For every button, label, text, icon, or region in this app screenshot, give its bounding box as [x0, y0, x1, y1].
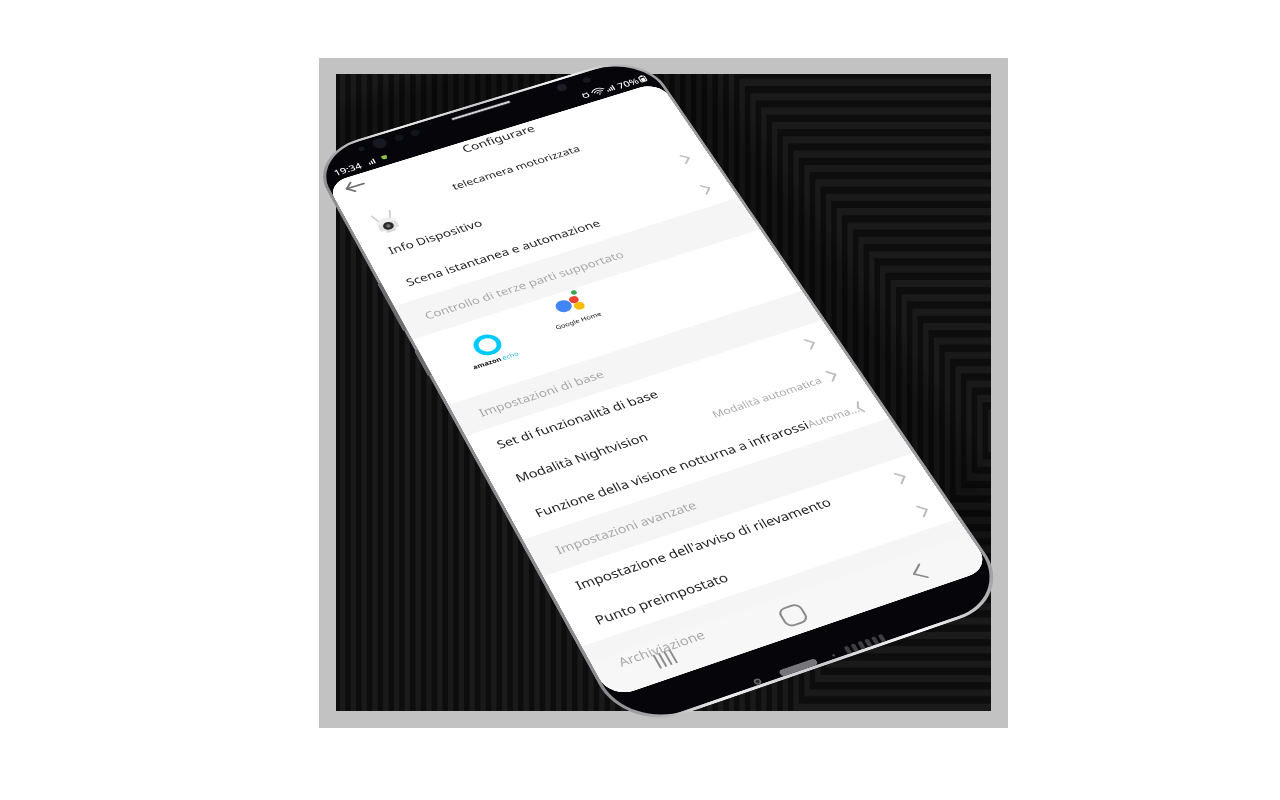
button[interactable]: Indietro	[844, 534, 992, 611]
staticText: Impostazione dell'avviso di rilevamento	[572, 493, 835, 594]
staticText: Configurare	[459, 122, 538, 156]
staticText: Set di funzionalità di base	[493, 386, 662, 452]
button[interactable]: Indietro	[331, 171, 380, 204]
staticText: Impostazioni avanzate	[552, 497, 701, 558]
staticText: Archiviazione	[615, 626, 708, 670]
button[interactable]: Scena istantanea e automazione	[376, 166, 738, 306]
staticText: Controllo di terze parti supportato	[422, 248, 627, 323]
staticText: telecamera motorizzata	[449, 142, 583, 192]
staticText: Punto preimpostato	[591, 568, 732, 629]
staticText: Modalità Nightvision	[512, 428, 652, 486]
staticText: Funzione della visione notturna a infrar…	[532, 417, 812, 521]
button[interactable]: Funzione della visione notturna a infrar…	[503, 384, 889, 540]
staticText: amazon	[471, 355, 504, 372]
button[interactable]: Info Dispositivo	[359, 137, 717, 273]
button[interactable]: Home	[718, 576, 866, 655]
button[interactable]: Punto preimpostato	[562, 486, 958, 646]
button[interactable]: Set di funzionalità di base	[465, 320, 844, 469]
staticText: 19:34	[331, 160, 364, 178]
staticText: Automa...	[804, 402, 862, 430]
button[interactable]: Impostazione dell'avviso di rilevamento	[543, 453, 935, 611]
staticText: Impostazioni di base	[476, 367, 607, 420]
staticText: echo	[500, 350, 521, 362]
button[interactable]: Recenti	[590, 619, 739, 699]
staticText: Modalità automatica	[709, 373, 825, 420]
button[interactable]: Modalità Nightvision	[484, 352, 866, 503]
staticText: Info Dispositivo	[385, 216, 486, 257]
staticText: 70%	[614, 75, 641, 91]
staticText: Scena istantanea e automazione	[403, 216, 603, 289]
staticText: Google Home	[554, 310, 604, 332]
